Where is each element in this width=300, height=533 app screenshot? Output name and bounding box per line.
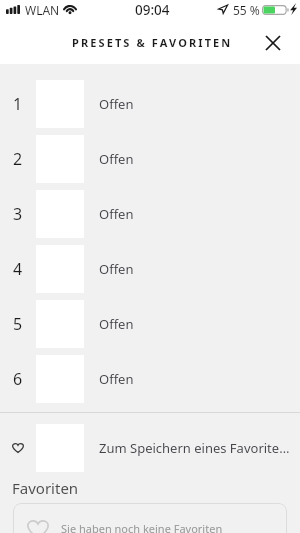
button[interactable]: 5 — [0, 300, 300, 348]
button[interactable]: 1 — [0, 80, 300, 128]
button[interactable]: 4 — [0, 245, 300, 293]
staticText: WLAN — [25, 2, 60, 18]
staticText: 55 % — [233, 2, 260, 18]
staticText: Offen — [99, 150, 134, 168]
staticText: Offen — [99, 205, 134, 223]
staticText: Zum Speichern eines Favorite… — [99, 439, 290, 457]
staticText: 4 — [13, 258, 23, 280]
staticText: 3 — [13, 203, 23, 225]
button[interactable]: 3 — [0, 190, 300, 238]
button[interactable]: 2 — [0, 135, 300, 183]
staticText: Offen — [99, 95, 134, 113]
button[interactable]: Schliessen — [258, 28, 288, 58]
staticText: 6 — [13, 368, 23, 390]
staticText: Favoriten — [12, 478, 79, 498]
staticText: PRESETS & FAVORITEN — [72, 35, 233, 50]
button[interactable]: Sie haben noch keine Favoriten — [13, 503, 287, 533]
staticText: 2 — [13, 148, 23, 170]
staticText: Sie haben noch keine Favoriten — [61, 521, 223, 533]
button[interactable]: 6 — [0, 355, 300, 403]
staticText: 1 — [13, 93, 23, 115]
button[interactable]: Zum Speichern eines Favorite… — [0, 424, 300, 472]
staticText: Offen — [99, 370, 134, 388]
staticText: Offen — [99, 260, 134, 278]
staticText: Offen — [99, 315, 134, 333]
staticText: 5 — [13, 313, 23, 335]
staticText: 09:04 — [135, 1, 170, 19]
